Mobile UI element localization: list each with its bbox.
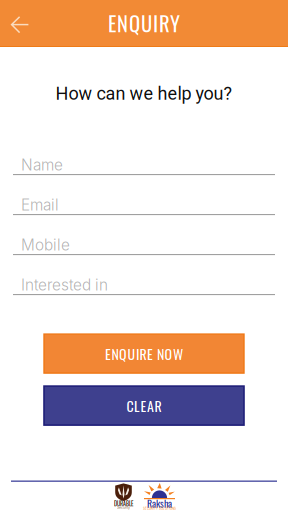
staticText: Raksha: [147, 496, 172, 511]
button[interactable]: Interested in: [13, 255, 275, 295]
staticText: Mobile: [21, 235, 70, 254]
button[interactable]: CLEAR: [44, 386, 244, 425]
button[interactable]: Back: [0, 0, 40, 46]
staticText: CLEAR: [123, 395, 165, 416]
staticText: Email: [21, 195, 59, 214]
staticText: Security: [117, 505, 130, 510]
staticText: How can we help you?: [55, 83, 232, 104]
staticText: DURABLE: [114, 499, 133, 508]
staticText: SECURITY SOLUTIONS: [143, 507, 176, 510]
button[interactable]: Email: [13, 175, 275, 215]
button[interactable]: Name: [13, 135, 275, 175]
button[interactable]: ENQUIRE NOW: [44, 334, 244, 373]
button[interactable]: Mobile: [13, 215, 275, 255]
staticText: ENQUIRY: [102, 8, 186, 38]
staticText: Name: [21, 155, 63, 174]
staticText: ENQUIRE NOW: [101, 343, 186, 364]
staticText: Interested in: [21, 275, 108, 294]
